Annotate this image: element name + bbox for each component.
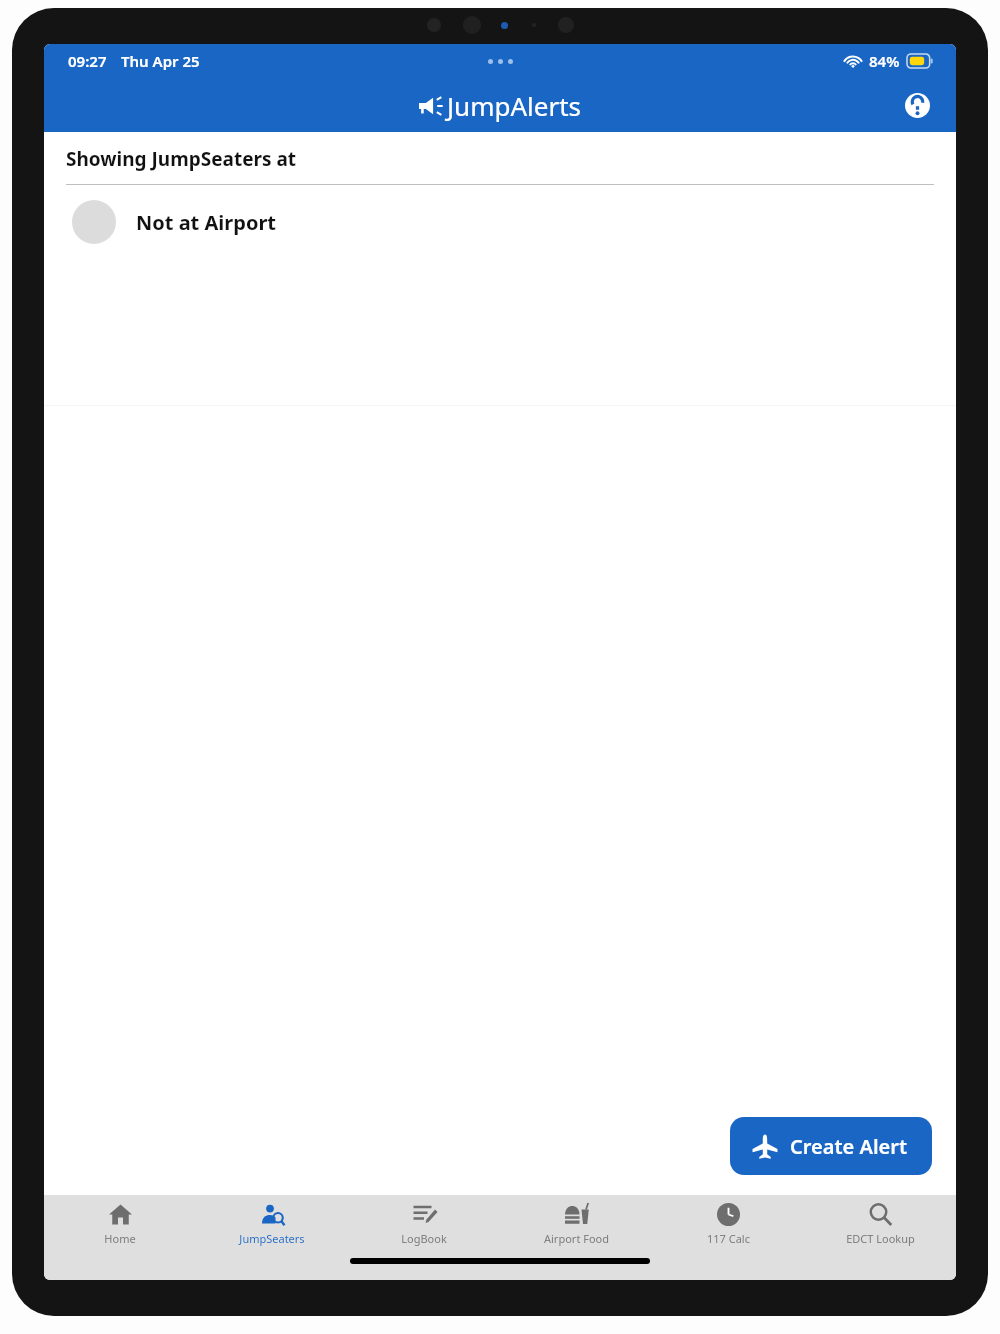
button[interactable]: EDCT Lookup [804, 1195, 956, 1253]
button[interactable]: Airport Food [500, 1195, 652, 1253]
staticText: LogBook [401, 1231, 447, 1246]
staticText: Home [104, 1231, 136, 1246]
button[interactable]: Home [44, 1195, 196, 1253]
button[interactable]: Create Alert [730, 1117, 932, 1175]
staticText: Showing JumpSeaters at [66, 146, 297, 172]
staticText: JumpAlerts [447, 88, 582, 123]
button[interactable]: Help [900, 88, 934, 122]
staticText: 117 Calc [707, 1231, 750, 1246]
staticText: Airport Food [544, 1231, 609, 1246]
staticText: 09:27 [68, 51, 107, 71]
button[interactable]: JumpSeaters [196, 1195, 348, 1253]
staticText: Thu Apr 25 [121, 51, 200, 71]
button[interactable]: 117 Calc [652, 1195, 804, 1253]
staticText: JumpSeaters [239, 1231, 305, 1246]
staticText: Create Alert [790, 1133, 908, 1160]
button[interactable]: Not at Airport [44, 185, 956, 259]
staticText: 84% [869, 51, 900, 71]
button[interactable]: LogBook [348, 1195, 500, 1253]
staticText: EDCT Lookup [846, 1231, 915, 1246]
staticText: Not at Airport [136, 209, 277, 236]
